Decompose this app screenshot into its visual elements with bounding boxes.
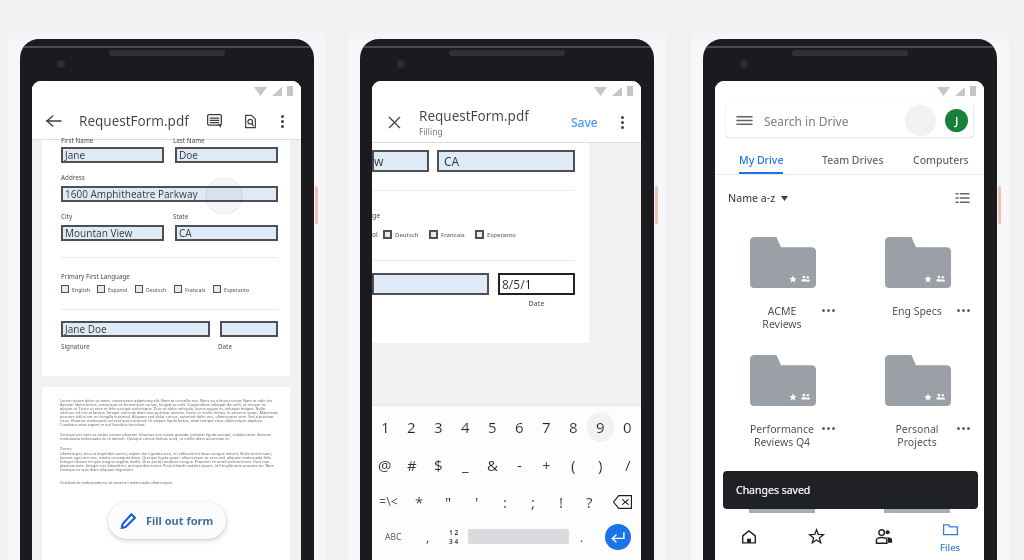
button[interactable]: : [491, 485, 519, 518]
staticText: Performance Reviews Q4 [739, 422, 825, 449]
button[interactable]: ( [560, 448, 587, 481]
button[interactable]: 2 [398, 410, 425, 443]
button[interactable]: & [479, 448, 506, 481]
staticText: 8 [569, 417, 578, 437]
staticText: , [426, 529, 430, 545]
staticText: : [503, 492, 508, 512]
button[interactable]: Find in document [238, 109, 262, 133]
staticText: 1 [381, 417, 390, 437]
button[interactable]: Eng Specs [849, 237, 984, 317]
button[interactable]: $ [425, 448, 452, 481]
button[interactable]: . [569, 520, 595, 553]
button[interactable]: ' [463, 485, 491, 518]
button[interactable]: More actions [957, 427, 970, 430]
staticText: CA [444, 153, 460, 169]
staticText: ) [598, 455, 603, 475]
staticText: Filling [419, 126, 443, 138]
staticText: 8/5/1 [502, 276, 532, 292]
staticText: Changes saved [736, 483, 811, 497]
staticText: Jane Doe [65, 322, 107, 336]
button[interactable]: _ [452, 448, 479, 481]
staticText: First Name [61, 136, 94, 144]
button[interactable]: =\< [372, 485, 405, 518]
button[interactable]: 8 [560, 410, 587, 443]
staticText: * [415, 492, 424, 512]
button[interactable]: ; [519, 485, 547, 518]
button[interactable]: , [415, 520, 440, 553]
button[interactable]: * [405, 485, 434, 518]
button[interactable]: Home [715, 513, 783, 560]
button[interactable]: 5 [479, 410, 506, 443]
button[interactable]: Back [42, 109, 66, 133]
button[interactable]: More options [611, 111, 633, 133]
button[interactable]: More options [271, 110, 293, 132]
button[interactable]: More actions [822, 309, 835, 312]
button[interactable]: 6 [506, 410, 533, 443]
button[interactable]: My Drive [715, 145, 807, 175]
button[interactable]: Personal Projects [849, 355, 984, 435]
button[interactable]: 7 [533, 410, 560, 443]
button[interactable]: Performance Reviews Q4 [715, 355, 849, 435]
button[interactable]: ABC [372, 520, 415, 553]
button[interactable]: + [533, 448, 560, 481]
button[interactable]: 1 [372, 410, 398, 443]
staticText: Esperanto [487, 231, 516, 239]
staticText: Primary First Language [61, 272, 130, 280]
button[interactable]: 9 [587, 410, 614, 443]
staticText: ! [559, 492, 564, 512]
staticText: Date [218, 342, 232, 350]
button[interactable]: 4 [452, 410, 479, 443]
button[interactable]: Files [917, 513, 984, 560]
button[interactable]: Team Drives [807, 145, 898, 175]
button[interactable]: Account [945, 109, 968, 132]
button[interactable]: Close [382, 110, 406, 134]
button[interactable]: Shared with me [850, 513, 917, 560]
button[interactable]: Save [568, 109, 601, 135]
staticText: $ [434, 455, 443, 475]
staticText: 0 [623, 417, 632, 437]
staticText: J [955, 113, 959, 128]
button[interactable]: ACME Reviews [715, 237, 849, 317]
button[interactable]: More actions [822, 427, 835, 430]
button[interactable]: Enter [595, 520, 641, 553]
button[interactable]: Name a-z [728, 191, 788, 205]
button[interactable]: ? [575, 485, 603, 518]
button[interactable]: - [506, 448, 533, 481]
button[interactable]: " [434, 485, 463, 518]
button[interactable]: Computers [898, 145, 984, 175]
button[interactable]: Backspace [603, 485, 641, 518]
staticText: & [487, 455, 498, 475]
staticText: Quisque nec ante ac turpis ornare placer… [60, 432, 279, 441]
staticText: RequestForm.pdf [419, 107, 529, 125]
staticText: 1 2 [449, 528, 459, 537]
button[interactable]: @ [372, 448, 398, 481]
button[interactable]: 0 [614, 410, 641, 443]
button[interactable]: Search in Drive [726, 104, 973, 137]
button[interactable]: 1 2 [440, 520, 468, 553]
button[interactable]: ) [587, 448, 614, 481]
staticText: Computers [913, 153, 969, 167]
button[interactable]: More actions [957, 309, 970, 312]
button[interactable]: ! [547, 485, 575, 518]
staticText: Fill out form [146, 513, 214, 528]
staticText: Mountan View [65, 226, 133, 240]
staticText: 7 [542, 417, 551, 437]
staticText: _ [462, 455, 469, 475]
button[interactable]: Switch to list view [953, 189, 971, 207]
staticText: Last Name [173, 136, 205, 144]
button[interactable]: # [398, 448, 425, 481]
button[interactable]: Fill out form [108, 502, 226, 539]
button[interactable]: 3 [425, 410, 452, 443]
staticText: + [542, 455, 551, 475]
staticText: 3 4 [449, 537, 459, 546]
staticText: . [580, 529, 584, 545]
button[interactable]: / [614, 448, 641, 481]
staticText: ge [372, 211, 381, 221]
button[interactable]: Starred [783, 513, 850, 560]
staticText: State [173, 212, 189, 220]
staticText: Esperanto [224, 286, 250, 293]
staticText: 2 [407, 417, 416, 437]
button[interactable]: Comments [202, 109, 226, 133]
staticText: 9 [596, 417, 605, 437]
